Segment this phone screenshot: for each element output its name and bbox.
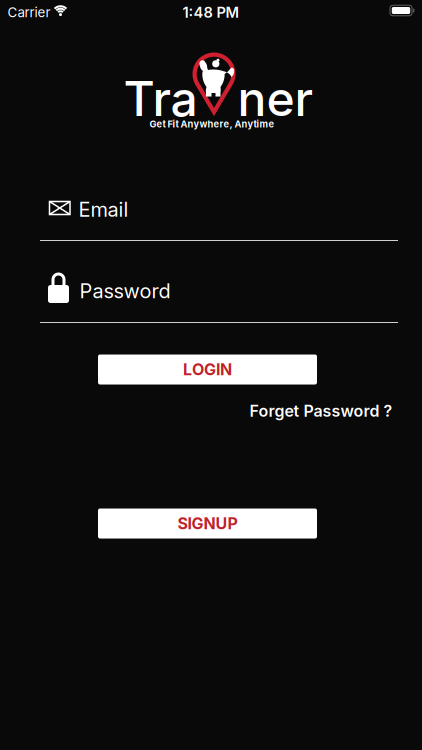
staticText: Get Fit Anywhere, Anytime — [149, 118, 274, 129]
button[interactable]: Forget Password ? — [249, 402, 392, 420]
staticText: Email — [78, 198, 128, 221]
button[interactable]: Password — [40, 266, 398, 323]
button[interactable]: SIGNUP — [98, 508, 317, 538]
staticText: Password — [79, 279, 170, 303]
staticText: 1:48 PM — [182, 4, 239, 21]
staticText: LOGIN — [183, 360, 232, 379]
staticText: Tra — [123, 70, 197, 127]
staticText: ner — [237, 70, 313, 127]
staticText: Carrier — [7, 5, 50, 20]
button[interactable]: LOGIN — [98, 354, 317, 384]
button[interactable]: Email — [40, 189, 398, 241]
staticText: SIGNUP — [177, 514, 237, 533]
staticText: Forget Password ? — [249, 402, 392, 420]
